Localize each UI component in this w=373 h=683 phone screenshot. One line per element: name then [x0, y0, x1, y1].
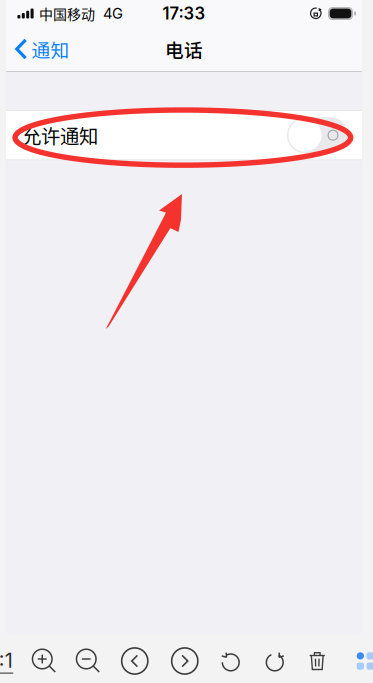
button[interactable]: Previous image	[119, 638, 151, 683]
button[interactable]: Rotate left	[218, 638, 244, 683]
staticText: 4G	[103, 5, 123, 22]
staticText: 电话	[165, 35, 203, 62]
staticText: 17:33	[162, 3, 205, 24]
staticText: 通知	[31, 35, 69, 62]
staticText: 允许通知	[22, 121, 98, 149]
button[interactable]: Delete	[305, 638, 329, 683]
button[interactable]: 通知	[6, 27, 81, 71]
button[interactable]: Zoom out	[73, 638, 103, 683]
button[interactable]: Zoom in	[29, 638, 59, 683]
button[interactable]: 允许通知	[6, 111, 362, 160]
button[interactable]: Next image	[169, 638, 201, 683]
button[interactable]: Rotate right	[262, 638, 288, 683]
staticText: :1	[0, 648, 13, 673]
button[interactable]: Actual size	[0, 638, 14, 683]
staticText: 中国移动	[39, 3, 95, 24]
button[interactable]: Thumbnails	[355, 638, 373, 683]
